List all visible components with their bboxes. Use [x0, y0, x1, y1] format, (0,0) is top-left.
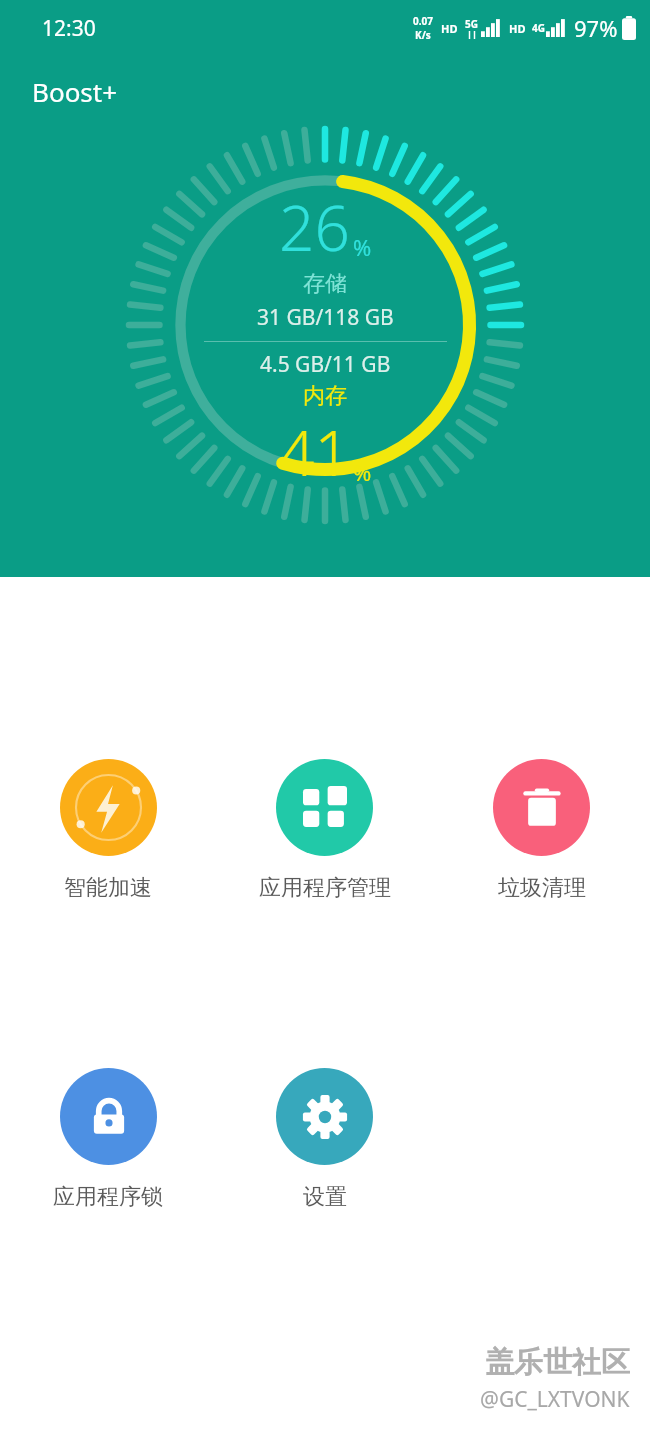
- other: 应用程序管理: [303, 786, 347, 830]
- button[interactable]: 垃圾清理: [433, 755, 650, 906]
- staticText: 垃圾清理: [498, 874, 586, 902]
- staticText: 应用程序锁: [53, 1183, 163, 1211]
- staticText: 盖乐世社区: [485, 1344, 630, 1381]
- other: 垃圾清理: [521, 787, 563, 829]
- staticText: 4.5 GB/11 GB: [260, 350, 391, 379]
- staticText: K/s: [415, 28, 431, 42]
- other: 应用程序锁: [88, 1096, 130, 1138]
- staticText: 设置: [303, 1183, 347, 1211]
- staticText: HD: [441, 21, 458, 36]
- staticText: Boost+: [32, 74, 118, 109]
- button[interactable]: 设置: [216, 1064, 433, 1215]
- other: 设置: [302, 1094, 348, 1140]
- button[interactable]: 智能加速: [0, 755, 216, 906]
- staticText: 26: [279, 185, 350, 269]
- staticText: @GC_LXTVONK: [480, 1385, 630, 1414]
- staticText: 12:30: [42, 14, 96, 43]
- button[interactable]: 应用程序锁: [0, 1064, 216, 1215]
- staticText: 内存: [303, 382, 347, 410]
- staticText: 智能加速: [64, 874, 152, 902]
- staticText: %: [353, 232, 372, 262]
- button[interactable]: 应用程序管理: [216, 755, 433, 906]
- staticText: 41: [279, 410, 350, 494]
- staticText: 应用程序管理: [259, 874, 391, 902]
- staticText: 0.07: [413, 14, 433, 28]
- staticText: 5G: [465, 17, 478, 31]
- staticText: %: [353, 457, 372, 487]
- staticText: 4G: [532, 21, 545, 35]
- staticText: HD: [509, 21, 526, 36]
- staticText: 97%: [574, 13, 618, 43]
- other: 智能加速: [60, 759, 157, 856]
- staticText: 存储: [303, 270, 347, 298]
- staticText: 31 GB/118 GB: [257, 303, 394, 332]
